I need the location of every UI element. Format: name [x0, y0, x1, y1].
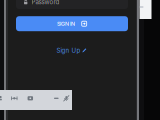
button[interactable]: Format: [11, 95, 17, 101]
button[interactable]: Password: [16, 0, 128, 9]
staticText: Password: [32, 0, 60, 6]
button[interactable]: More: [54, 98, 59, 99]
button[interactable]: SIGN IN: [16, 16, 128, 31]
button[interactable]: Stickers: [0, 95, 2, 101]
button[interactable]: Dictation: [63, 95, 69, 101]
button[interactable]: Line tool: [139, 6, 143, 8]
button[interactable]: Sign Up: [56, 47, 86, 54]
staticText: Sign Up: [56, 47, 80, 54]
button[interactable]: Camera: [27, 95, 33, 101]
staticText: SIGN IN: [57, 20, 75, 27]
